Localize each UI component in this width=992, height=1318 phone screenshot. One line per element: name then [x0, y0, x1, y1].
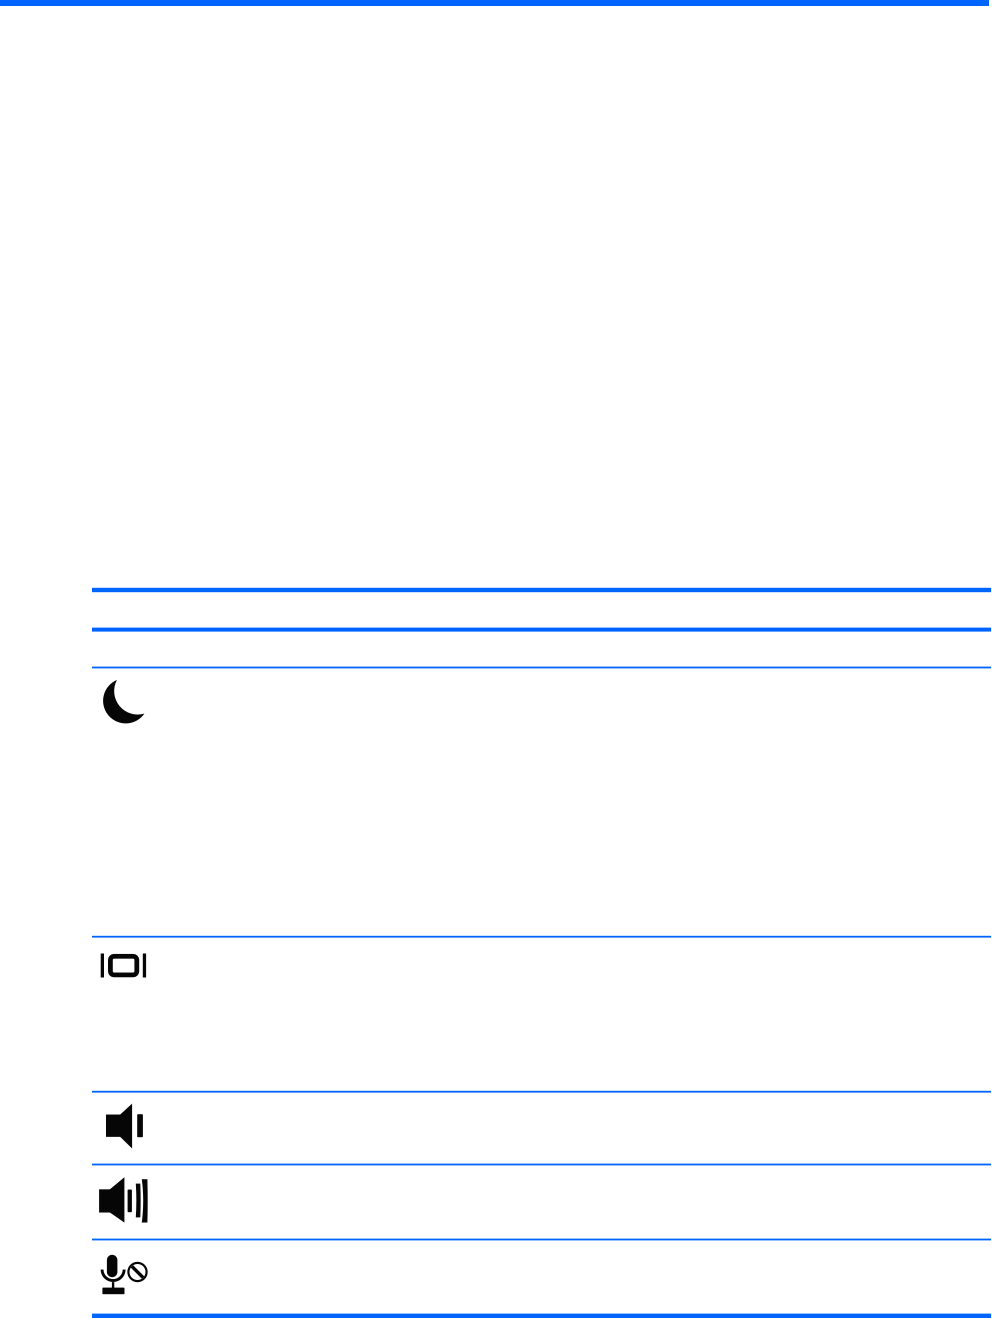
- button[interactable]: Mute microphone: [100, 1253, 150, 1295]
- button[interactable]: Switch screen image: [101, 953, 147, 977]
- button[interactable]: Sleep: [100, 678, 150, 728]
- button[interactable]: Increase speaker volume: [99, 1177, 149, 1223]
- button[interactable]: Decrease speaker volume: [106, 1102, 144, 1150]
